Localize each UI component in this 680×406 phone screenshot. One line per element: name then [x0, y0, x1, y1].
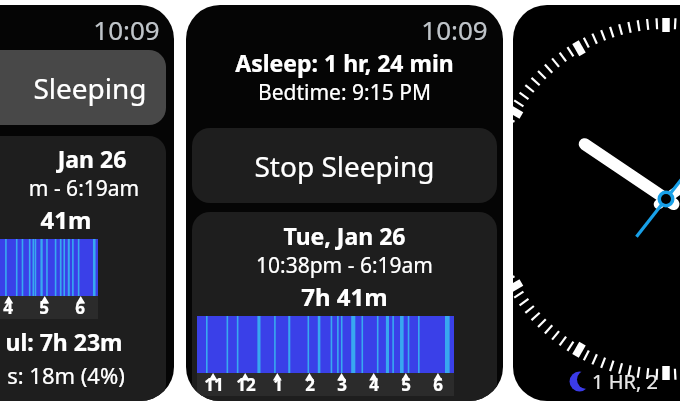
staticText: 10:09: [421, 12, 488, 47]
staticText: Sleeping: [33, 69, 147, 107]
staticText: 1: [273, 373, 283, 396]
staticText: 11: [204, 373, 224, 396]
button[interactable]: Sleep duration complication: [569, 368, 658, 395]
staticText: Asleep: 1 hr, 24 min: [186, 47, 503, 78]
staticText: s: 18m (4%): [0, 360, 164, 390]
staticText: 7h 41m: [192, 280, 497, 313]
staticText: 1 HR, 2: [592, 368, 658, 395]
staticText: 12: [236, 373, 256, 396]
staticText: 6: [75, 296, 85, 319]
staticText: 4: [369, 373, 379, 396]
staticText: 2: [305, 373, 315, 396]
button[interactable]: Tue, Jan 26: [192, 212, 497, 401]
staticText: 5: [39, 296, 49, 319]
button[interactable]: Stop Sleeping: [192, 128, 497, 203]
staticText: 4: [3, 296, 13, 319]
button[interactable]: Jan 26: [0, 136, 166, 401]
staticText: Stop Sleeping: [254, 147, 435, 185]
staticText: Tue, Jan 26: [192, 220, 497, 251]
staticText: 10:09: [93, 12, 160, 47]
staticText: 10:38pm - 6:19am: [192, 251, 497, 280]
staticText: 6: [433, 373, 443, 396]
staticText: Bedtime: 9:15 PM: [186, 78, 503, 107]
staticText: 5: [401, 373, 411, 396]
staticText: ul: 7h 23m: [0, 326, 162, 357]
staticText: 3: [337, 373, 347, 396]
button[interactable]: Sleeping: [0, 50, 166, 125]
staticText: Jan 26: [0, 143, 166, 174]
staticText: m - 6:19am: [0, 174, 166, 203]
staticText: 41m: [0, 203, 164, 236]
